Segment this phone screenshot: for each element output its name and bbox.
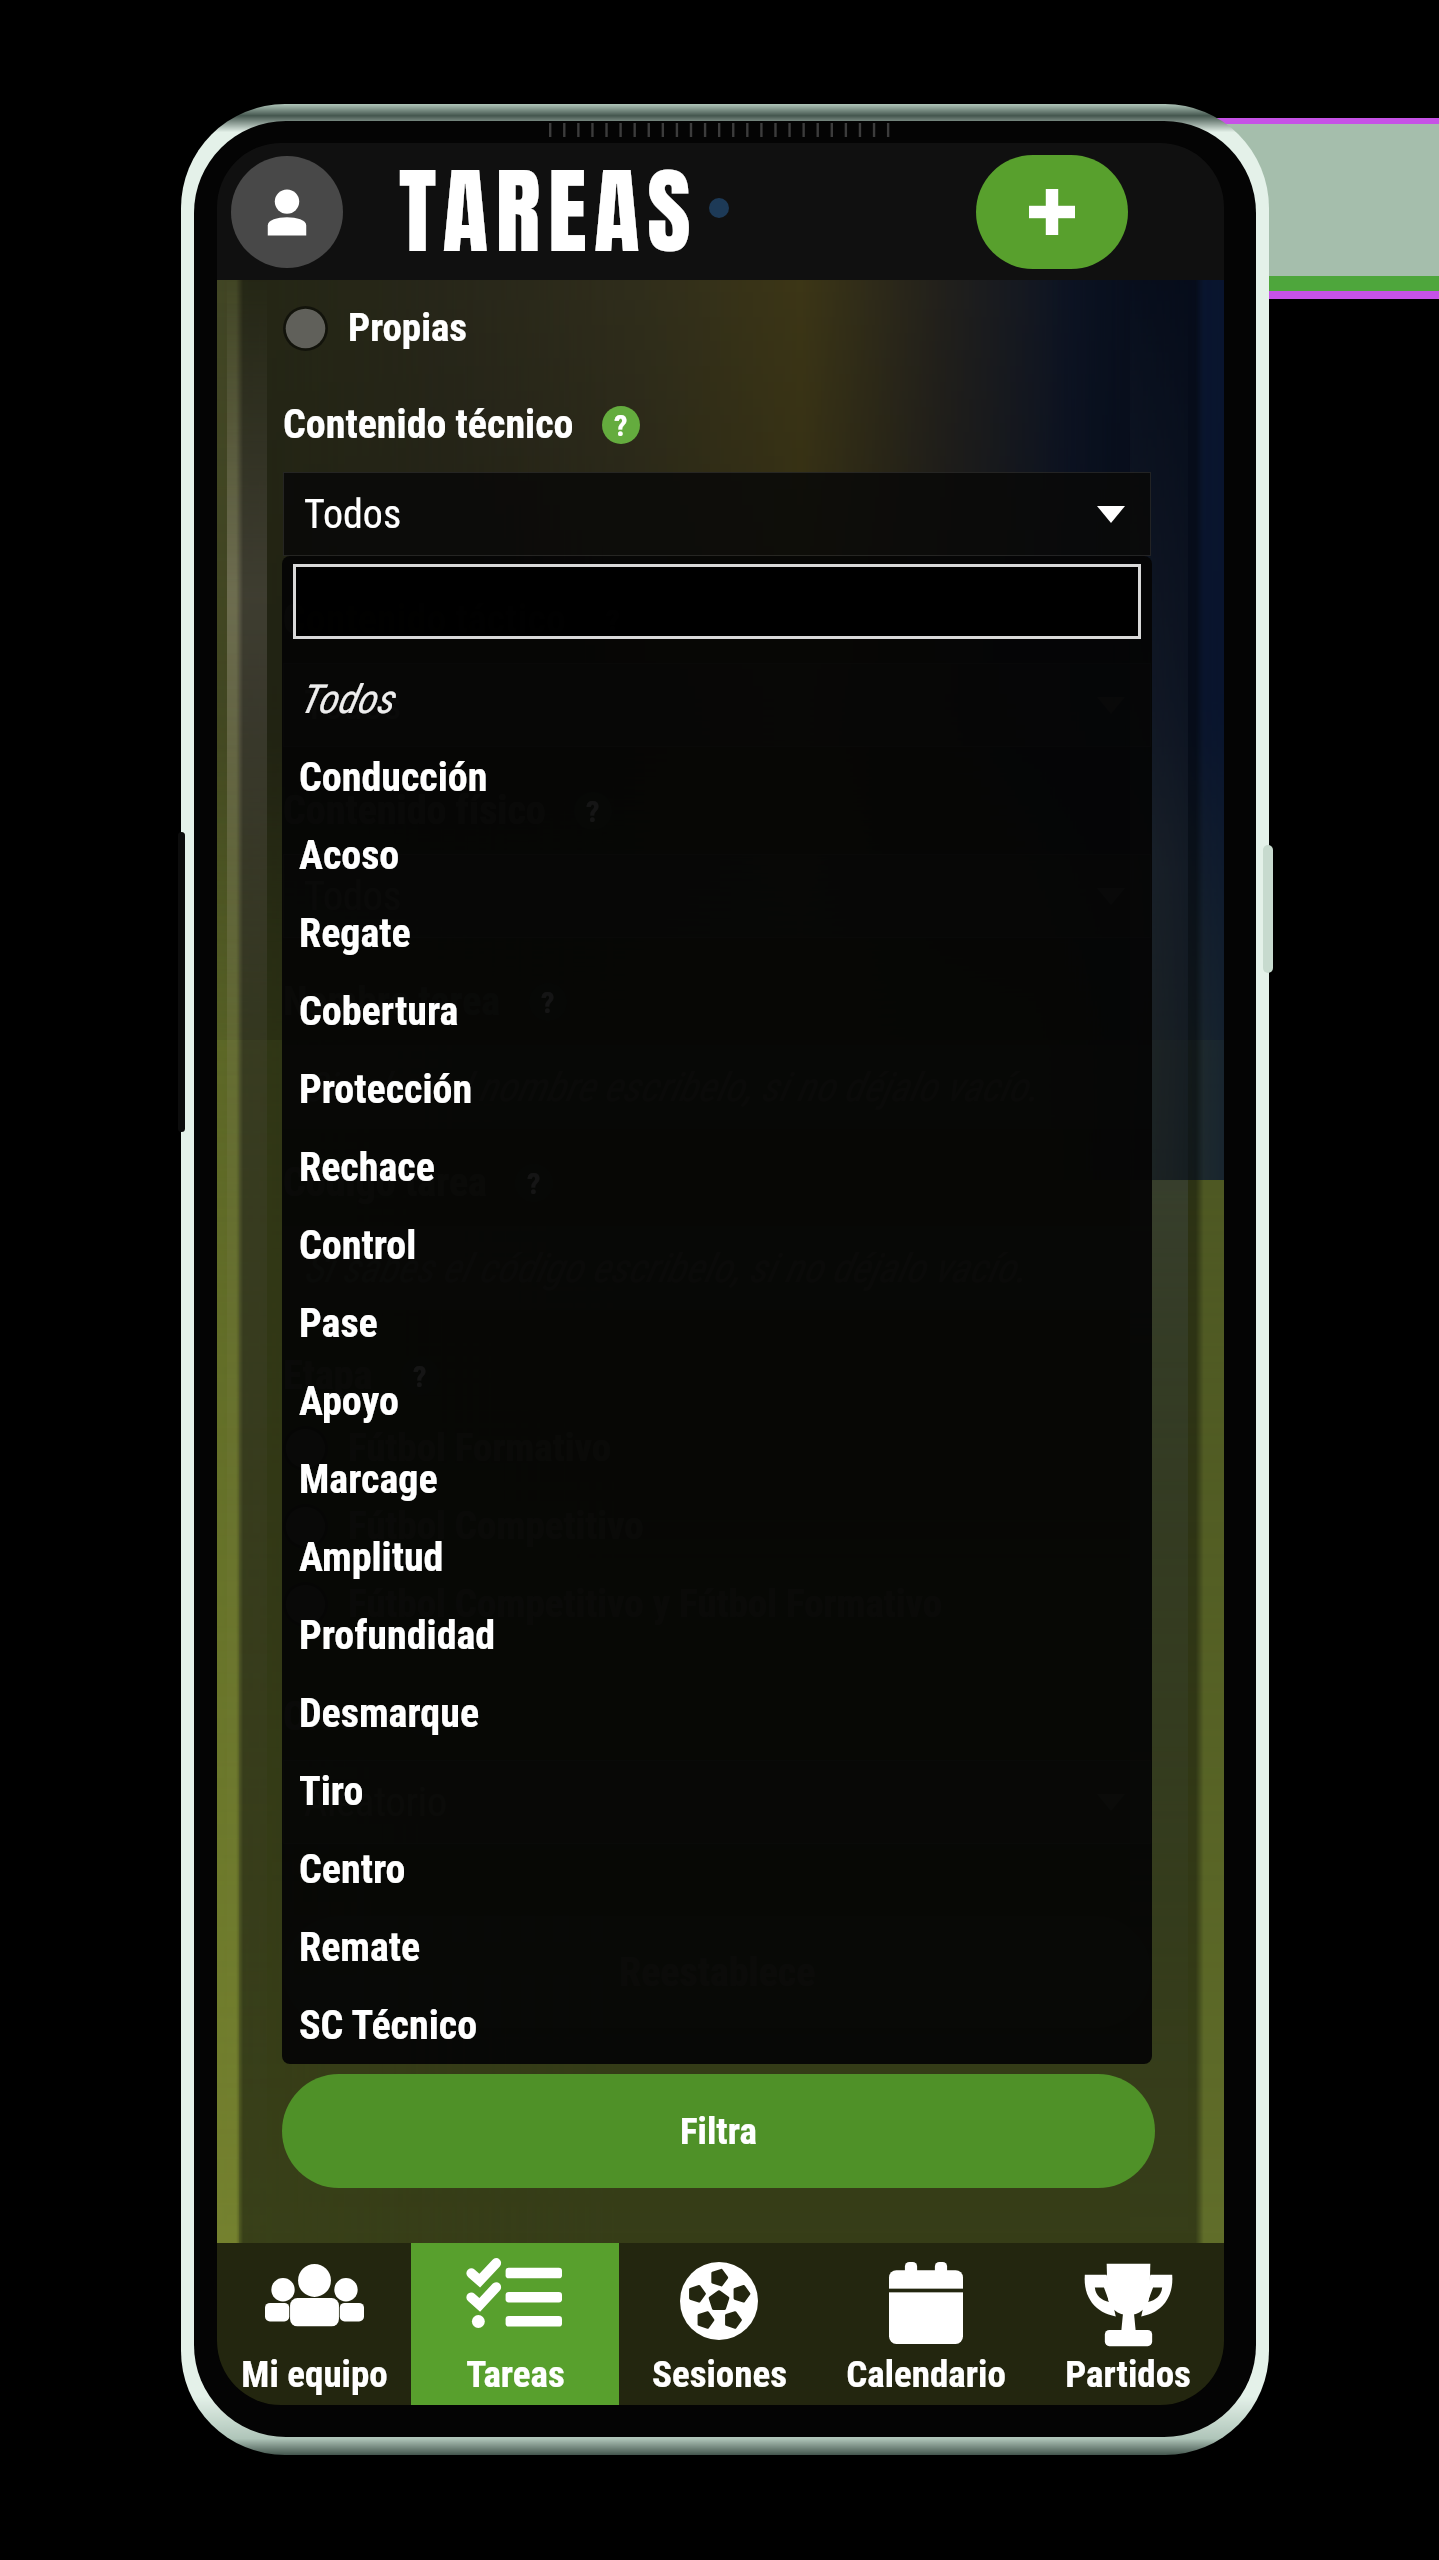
button[interactable]: SC Técnico [282, 1986, 1152, 2064]
button[interactable]: Protección [282, 1050, 1152, 1128]
staticText: Calendario [846, 2353, 1006, 2396]
button[interactable]: Profundidad [282, 1596, 1152, 1674]
button[interactable]: Ayuda [407, 1698, 445, 1736]
staticText: Cobertura [299, 988, 459, 1035]
staticText: Orden [283, 1693, 379, 1740]
button[interactable]: Todos [283, 663, 1151, 747]
staticText: Partidos [1065, 2353, 1191, 2396]
staticText: Todos [304, 491, 402, 538]
staticText: Regate [299, 910, 411, 957]
staticText: Conducción [299, 754, 488, 801]
staticText: Protección [299, 1066, 473, 1113]
staticText: Si sabes el código escribelo, si no déja… [304, 1245, 1026, 1292]
button[interactable]: Aleatorio [283, 1760, 1151, 1844]
staticText: Contenido táctico [283, 596, 566, 643]
button[interactable]: Regate [282, 894, 1152, 972]
button[interactable]: Pase [282, 1284, 1152, 1362]
staticText: Contenido físico [283, 787, 546, 834]
staticText: ? [419, 1700, 433, 1735]
button[interactable]: Desmarque [282, 1674, 1152, 1752]
button[interactable]: Tareas [411, 2243, 619, 2405]
staticText: Nombre tarea [283, 978, 501, 1025]
staticText: Todos [299, 676, 394, 723]
button[interactable]: Ayuda [401, 1357, 439, 1395]
button[interactable]: Cobertura [282, 972, 1152, 1050]
button[interactable]: Fútbol Competitivo y Fútbol Formativo [283, 1581, 1151, 1627]
button[interactable]: Ayuda [602, 406, 640, 444]
button[interactable]: Propias [283, 305, 1151, 351]
staticText: Desmarque [299, 1690, 480, 1737]
button[interactable]: Ayuda [574, 792, 612, 830]
staticText: Contenido técnico [283, 401, 574, 448]
button[interactable]: Sesiones [619, 2243, 819, 2405]
button[interactable]: Ayuda [594, 601, 632, 639]
staticText: Amplitud [299, 1534, 444, 1581]
staticText: Control [299, 1222, 417, 1269]
staticText: Apoyo [299, 1378, 399, 1425]
staticText: Fútbol Competitivo [348, 1503, 644, 1549]
button[interactable]: Conducción [282, 738, 1152, 816]
staticText: Tiro [299, 1768, 364, 1815]
button[interactable]: Todos [283, 472, 1151, 556]
staticText: ? [527, 1166, 541, 1201]
button[interactable]: Todos [283, 854, 1151, 938]
staticText: SC Técnico [299, 2002, 478, 2049]
staticText: Código tarea [283, 1159, 487, 1206]
staticText: Sesiones [652, 2353, 787, 2396]
button[interactable]: Tiro [282, 1752, 1152, 1830]
button[interactable]: Ayuda [515, 1164, 553, 1202]
button[interactable]: Rechace [282, 1128, 1152, 1206]
button[interactable]: Si sabes el código escribelo, si no déja… [283, 1226, 1151, 1310]
staticText: ? [541, 985, 555, 1020]
staticText: Centro [299, 1846, 406, 1893]
button[interactable]: Filtra [282, 2074, 1155, 2188]
staticText: Fútbol Competitivo y Fútbol Formativo [348, 1581, 943, 1627]
staticText: Propias [348, 305, 468, 351]
staticText: Mi equipo [241, 2353, 388, 2396]
staticText: Todos [304, 682, 402, 729]
button[interactable]: Mi equipo [217, 2243, 411, 2405]
button[interactable]: Si sabes el nombre escribelo, si no déja… [283, 1045, 1151, 1129]
staticText: Filtra [680, 2110, 757, 2153]
button[interactable]: Acoso [282, 816, 1152, 894]
staticText: ? [586, 794, 600, 829]
staticText: Todos [304, 873, 402, 920]
button[interactable]: Todos [282, 660, 1152, 738]
button[interactable]: Fútbol Competitivo [283, 1503, 1151, 1549]
staticText: Rechace [299, 1144, 435, 1191]
staticText: ? [606, 603, 620, 638]
button[interactable]: Control [282, 1206, 1152, 1284]
button[interactable]: Buscar [293, 564, 1141, 639]
staticText: Profundidad [299, 1612, 496, 1659]
button[interactable]: Centro [282, 1830, 1152, 1908]
staticText: Marcage [299, 1456, 438, 1503]
staticText: ? [614, 408, 628, 443]
button[interactable]: Remate [282, 1908, 1152, 1986]
staticText: Aleatorio [304, 1779, 448, 1826]
button[interactable]: Reestablece [283, 1916, 1151, 2028]
button[interactable]: Ayuda [529, 983, 567, 1021]
button[interactable]: Añadir tarea [976, 155, 1128, 269]
staticText: ? [413, 1359, 427, 1394]
button[interactable]: Apoyo [282, 1362, 1152, 1440]
button[interactable]: Perfil [231, 156, 343, 268]
staticText: Etapa [283, 1352, 373, 1399]
button[interactable]: Amplitud [282, 1518, 1152, 1596]
button[interactable]: Fútbol Formativo [283, 1425, 1151, 1471]
staticText: Si sabes el nombre escribelo, si no déja… [304, 1064, 1039, 1111]
staticText: TAREAS [399, 143, 699, 277]
staticText: Tareas [466, 2353, 565, 2396]
staticText: Acoso [299, 832, 400, 879]
staticText: Pase [299, 1300, 378, 1347]
button[interactable]: Calendario [819, 2243, 1032, 2405]
button[interactable]: Partidos [1032, 2243, 1224, 2405]
button[interactable]: Marcage [282, 1440, 1152, 1518]
staticText: Remate [299, 1924, 421, 1971]
